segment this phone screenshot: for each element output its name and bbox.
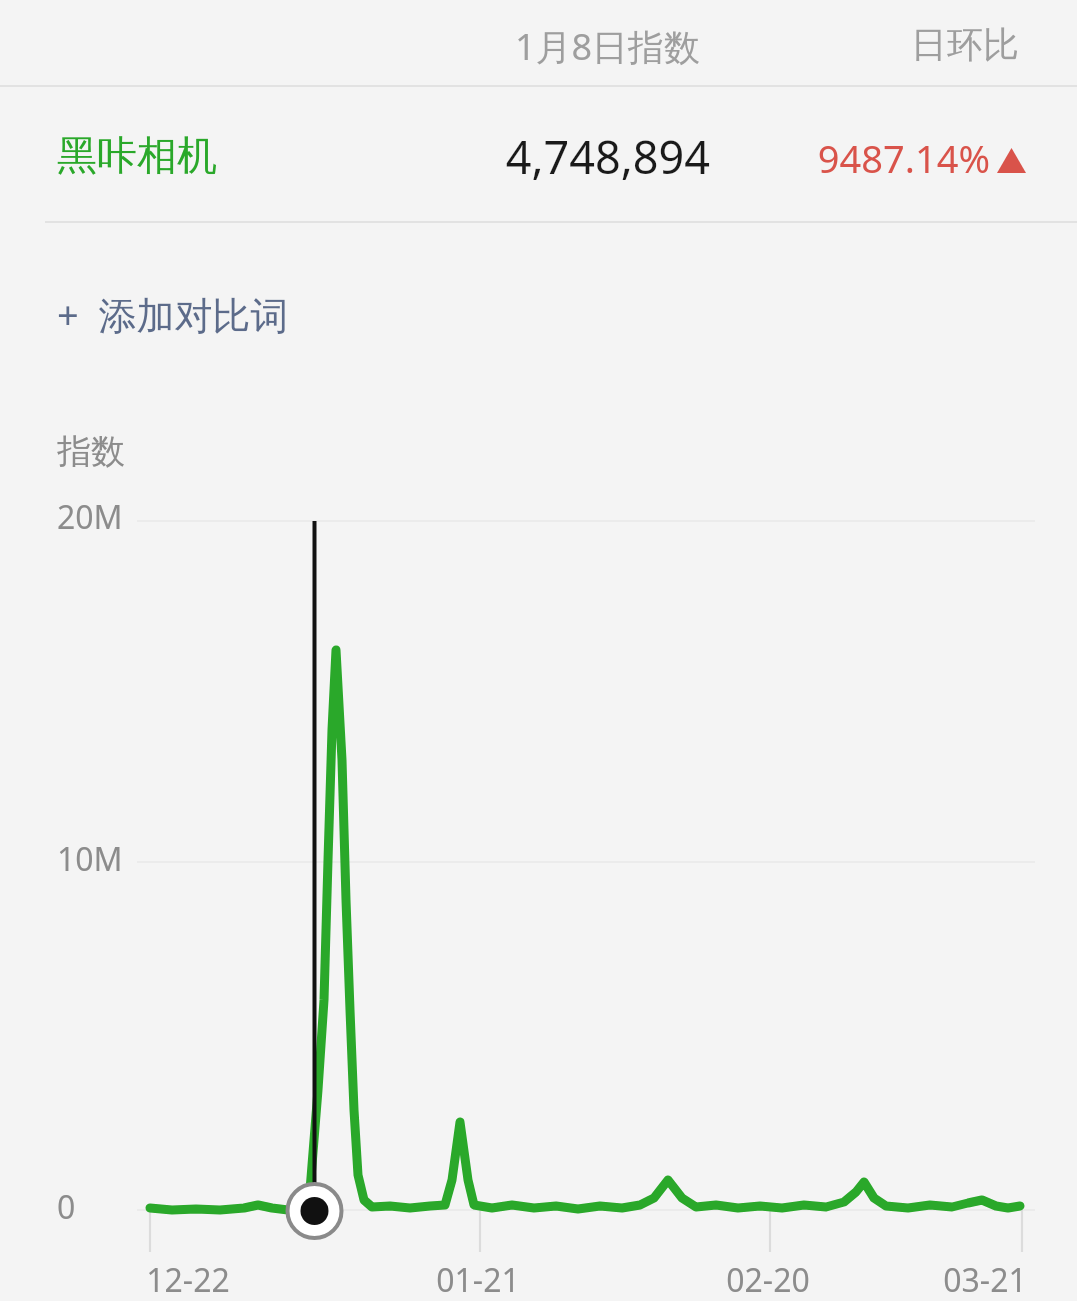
staticText: 9487.14% <box>760 132 990 184</box>
button[interactable]: 添加对比词 <box>45 274 307 352</box>
button[interactable] <box>0 90 1077 220</box>
staticText: 12-22 <box>128 1258 248 1301</box>
staticText: 20M <box>57 495 167 539</box>
staticText: 0 <box>57 1185 167 1229</box>
staticText: 日环比 <box>900 22 1030 67</box>
staticText: 10M <box>57 837 167 881</box>
staticText: 黑咔相机 <box>57 130 337 180</box>
staticText: 1月8日指数 <box>505 22 710 71</box>
staticText: 4,748,894 <box>440 126 710 187</box>
staticText: 01-21 <box>418 1258 538 1301</box>
staticText: 02-20 <box>708 1258 828 1301</box>
staticText: + 添加对比词 <box>57 288 377 340</box>
staticText: 指数 <box>57 430 197 473</box>
staticText: 03-21 <box>925 1258 1045 1301</box>
